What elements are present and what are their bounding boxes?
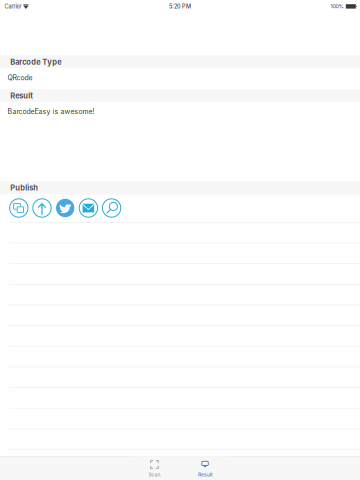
button[interactable]: Result (180, 456, 231, 480)
staticText: Result (198, 472, 213, 478)
staticText: Carrier (4, 3, 21, 10)
button[interactable]: Share by Mail (79, 199, 98, 217)
staticText: BarcodeEasy is awesome! (7, 107, 94, 116)
staticText: QRcode (7, 74, 32, 82)
button[interactable]: Share (33, 199, 51, 217)
staticText: Publish (10, 183, 38, 192)
button[interactable]: Share to Twitter (56, 199, 74, 217)
button[interactable]: Share to WeChat (10, 199, 28, 217)
staticText: Scan (148, 472, 160, 478)
staticText: Result (10, 91, 33, 100)
staticText: 5:20 PM (169, 3, 191, 10)
staticText: 100% (331, 3, 344, 10)
button[interactable]: Search (102, 199, 121, 217)
button[interactable]: Scan (129, 456, 180, 480)
staticText: Barcode Type (10, 57, 61, 67)
